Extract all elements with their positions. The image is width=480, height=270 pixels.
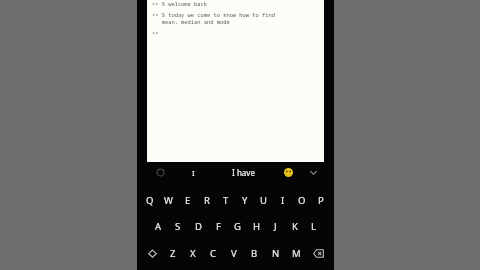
button[interactable]: R (197, 187, 216, 213)
staticText: Y (242, 194, 248, 207)
staticText: V (231, 247, 237, 260)
staticText: Z (170, 247, 176, 260)
staticText: B (251, 247, 258, 260)
button[interactable]: O (292, 187, 311, 213)
button[interactable]: Expand suggestions (302, 162, 324, 183)
button[interactable]: V (223, 239, 244, 267)
staticText: C (210, 247, 217, 260)
staticText: G (234, 220, 241, 233)
button[interactable]: M (286, 239, 307, 267)
button[interactable]: S (168, 213, 188, 239)
button[interactable]: U (254, 187, 273, 213)
button[interactable]: T (216, 187, 235, 213)
button[interactable]: D (188, 213, 208, 239)
staticText: O (298, 194, 306, 207)
staticText: R (204, 194, 210, 207)
button[interactable]: E (178, 187, 197, 213)
staticText: N (272, 247, 280, 260)
staticText: P (318, 194, 324, 207)
button[interactable]: X (183, 239, 203, 267)
button[interactable]: >> % welcome back (147, 0, 324, 162)
staticText: I (281, 194, 285, 207)
staticText: D (195, 220, 202, 233)
button[interactable]: Backspace (307, 239, 330, 267)
button[interactable]: Y (235, 187, 254, 213)
button[interactable]: Shift (141, 239, 163, 267)
staticText: mean, median and mode (152, 18, 230, 25)
staticText: >> % today we come to know how to find (152, 11, 275, 18)
staticText: M (292, 247, 301, 260)
staticText: W (164, 194, 173, 207)
button[interactable]: I (173, 162, 213, 183)
button[interactable]: J (266, 213, 285, 239)
button[interactable]: I have (213, 162, 274, 183)
button[interactable]: C (203, 239, 223, 267)
button[interactable]: K (285, 213, 304, 239)
staticText: J (274, 220, 277, 233)
staticText: K (292, 220, 298, 233)
button[interactable]: F (208, 213, 228, 239)
button[interactable]: B (244, 239, 265, 267)
button[interactable]: I (273, 187, 292, 213)
button[interactable]: A (148, 213, 168, 239)
staticText: F (216, 220, 221, 233)
button[interactable]: N (265, 239, 286, 267)
button[interactable]: W (159, 187, 178, 213)
staticText: I (192, 168, 195, 178)
staticText: U (260, 194, 267, 207)
staticText: S (175, 220, 181, 233)
button[interactable]: G (228, 213, 247, 239)
button[interactable]: Voice input (147, 162, 173, 183)
staticText: A (155, 220, 162, 233)
staticText: Q (146, 194, 154, 207)
staticText: I have (232, 167, 255, 178)
staticText: >> (152, 29, 159, 36)
button[interactable]: H (247, 213, 266, 239)
staticText: T (223, 194, 229, 207)
button[interactable]: L (304, 213, 323, 239)
staticText: X (190, 247, 196, 260)
staticText: H (253, 220, 261, 233)
staticText: L (311, 220, 316, 233)
staticText: E (185, 194, 191, 207)
button[interactable]: Z (163, 239, 183, 267)
button[interactable]: Emoji (274, 162, 302, 183)
staticText: >> % welcome back (152, 0, 207, 7)
button[interactable]: Q (141, 187, 159, 213)
button[interactable]: P (311, 187, 330, 213)
